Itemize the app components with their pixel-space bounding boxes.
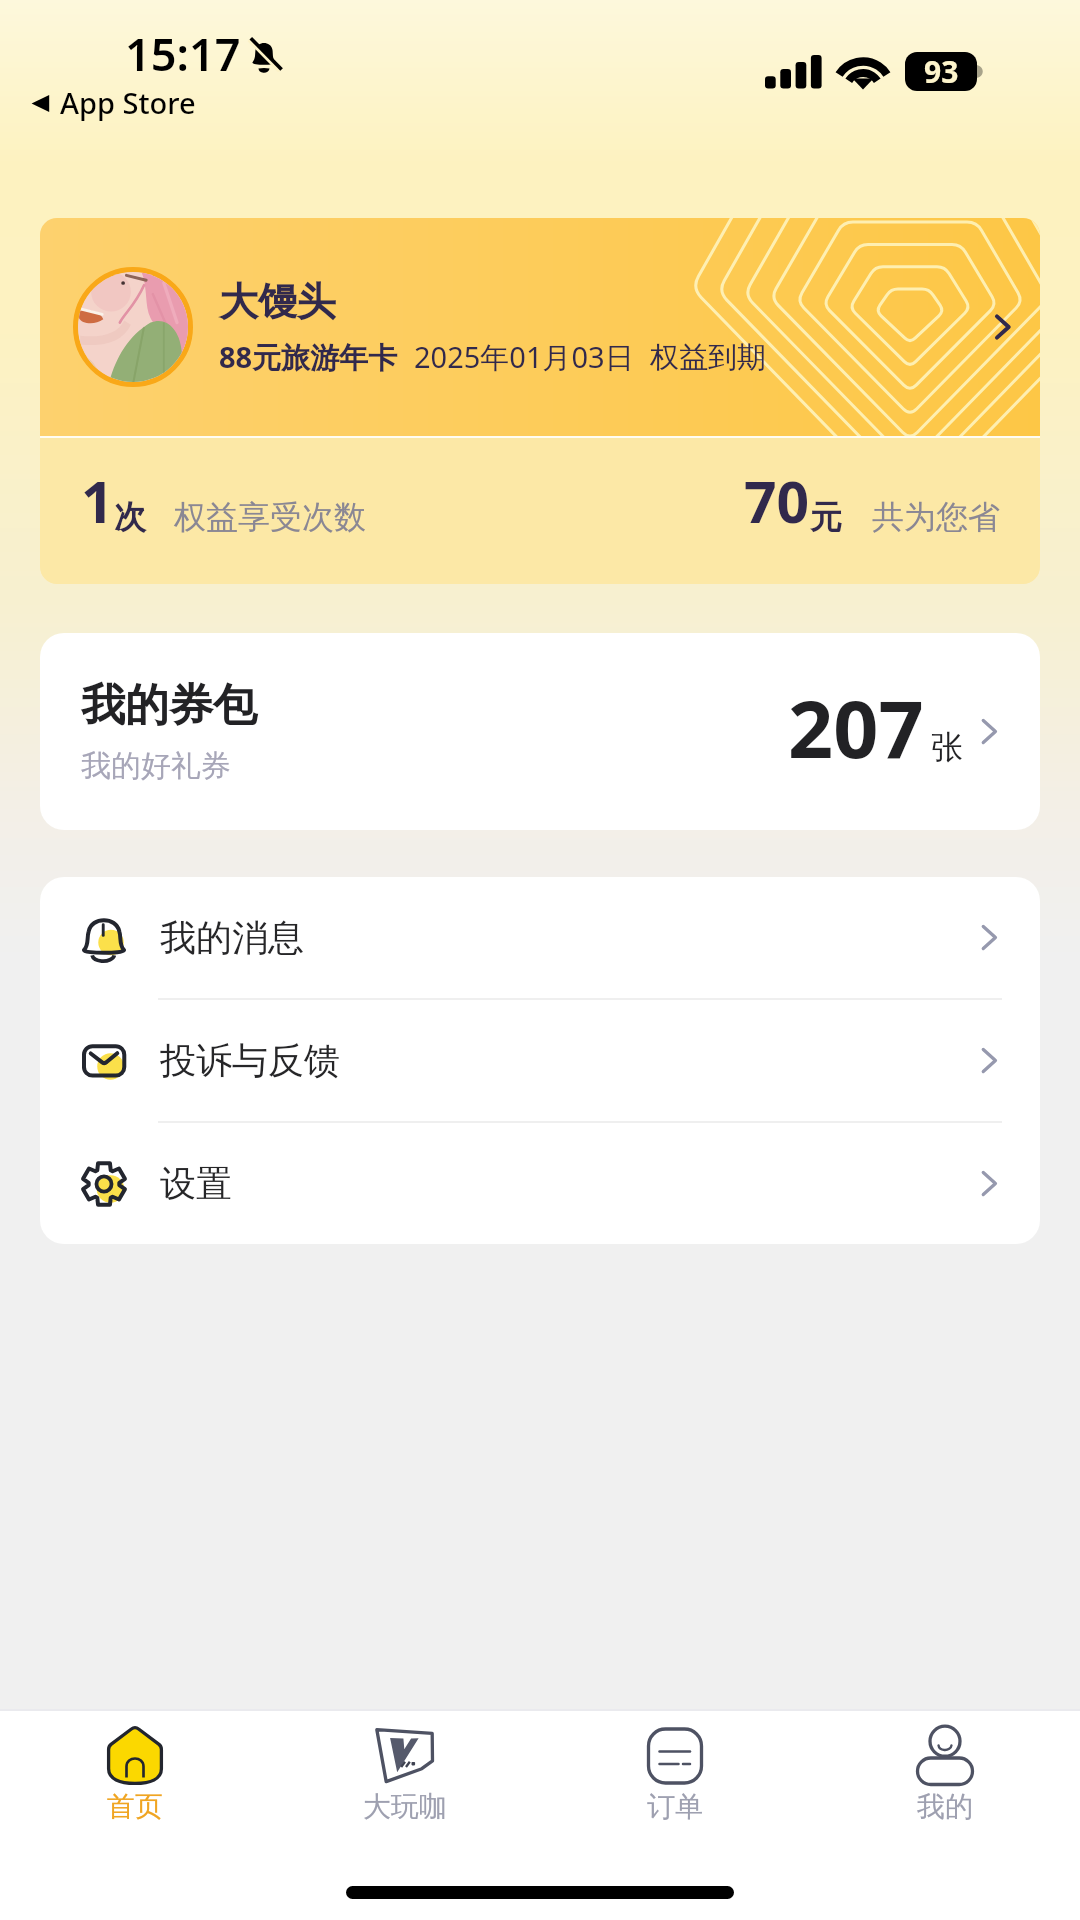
staticText: 207 — [788, 674, 924, 782]
staticText: 88元旅游年卡 — [219, 337, 398, 377]
staticText: 93 — [924, 52, 959, 90]
staticText: 共为您省 — [872, 497, 1000, 537]
staticText: 权益到期 — [650, 339, 766, 376]
staticText: App Store — [60, 83, 196, 122]
staticText: 我的消息 — [160, 915, 304, 960]
button[interactable]: Back to App Store — [30, 84, 196, 123]
button[interactable]: 设置 — [40, 1123, 1040, 1244]
staticText: 我的 — [917, 1789, 973, 1824]
button[interactable]: 我的消息 — [40, 877, 1040, 998]
staticText: 大玩咖 — [363, 1789, 447, 1824]
staticText: 1 — [81, 462, 114, 540]
staticText: 首页 — [107, 1789, 163, 1824]
staticText: 我的券包 — [81, 678, 257, 733]
staticText: 张 — [931, 727, 963, 767]
staticText: 订单 — [647, 1789, 703, 1824]
staticText: 2025年01月03日 — [414, 337, 634, 377]
staticText: 70 — [744, 462, 810, 540]
button[interactable]: 大玩咖 — [270, 1726, 540, 1824]
button[interactable]: 我的券包 — [40, 633, 1040, 830]
button[interactable]: 我的 — [810, 1726, 1080, 1824]
staticText: 大馒头 — [219, 277, 336, 326]
staticText: 设置 — [160, 1161, 232, 1206]
button[interactable]: 大馒头 — [40, 218, 1040, 584]
button[interactable]: 投诉与反馈 — [40, 1000, 1040, 1121]
staticText: 15:17 — [125, 23, 241, 84]
staticText: 元 — [810, 497, 842, 537]
staticText: 权益享受次数 — [174, 497, 366, 537]
staticText: 我的好礼券 — [81, 747, 231, 785]
button[interactable]: 订单 — [540, 1726, 810, 1824]
button[interactable]: 首页 — [0, 1726, 270, 1824]
staticText: 次 — [114, 497, 146, 537]
staticText: 投诉与反馈 — [160, 1038, 340, 1083]
